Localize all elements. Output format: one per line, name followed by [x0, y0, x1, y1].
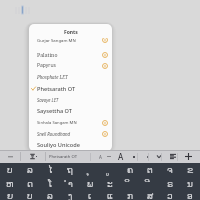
staticText: ລ	[47, 191, 53, 200]
staticText: ລ	[27, 165, 33, 175]
button[interactable]: ນ	[180, 177, 200, 191]
button[interactable]: ວ	[160, 191, 180, 200]
button[interactable]: Smaller text	[94, 150, 106, 163]
button[interactable]: ດ	[20, 177, 40, 191]
button[interactable]: ູ	[100, 163, 120, 177]
button[interactable]: ຈ	[160, 163, 180, 177]
button[interactable]: ແ	[100, 191, 120, 200]
button[interactable]: ບ	[0, 163, 20, 177]
staticText: ໄ	[48, 165, 53, 175]
staticText: ຖ	[67, 165, 73, 175]
button[interactable]: Phetsarath OT	[29, 83, 112, 94]
button[interactable]: ຍ	[0, 191, 20, 200]
button[interactable]: Align	[166, 150, 179, 163]
button[interactable]: Undo	[0, 150, 20, 163]
staticText: Fonts	[64, 29, 78, 36]
staticText: Papyrus	[37, 62, 56, 69]
staticText: ບ	[7, 165, 13, 175]
button[interactable]: ອ	[180, 191, 200, 200]
button[interactable]: Savoye LET	[29, 94, 112, 105]
staticText: ວ	[167, 191, 173, 200]
staticText: ເ	[88, 191, 92, 200]
staticText: ຈ	[167, 165, 173, 175]
button[interactable]: Snell Roundhand	[29, 128, 112, 139]
staticText: A	[118, 151, 124, 162]
button[interactable]: ຂ	[180, 163, 200, 177]
staticText: ກ	[127, 191, 134, 200]
staticText: ຄ	[127, 165, 134, 175]
button[interactable]: Text size	[104, 150, 114, 163]
staticText: Gurjar Sangam MN	[37, 38, 76, 43]
button[interactable]: More options	[153, 150, 165, 163]
button[interactable]: Larger text	[115, 150, 127, 163]
staticText: Saysettha OT	[37, 107, 72, 115]
button[interactable]: ລ	[20, 163, 40, 177]
staticText: Phetsarath OT	[37, 85, 76, 93]
staticText: ບ	[27, 191, 33, 200]
staticText: A	[99, 154, 102, 160]
staticText: ຂ	[187, 165, 194, 175]
staticText: Souliyo Unicode	[37, 141, 80, 149]
staticText: Snell Roundhand	[37, 131, 71, 137]
button[interactable]: ພ	[80, 177, 100, 191]
button[interactable]: ງ	[60, 191, 80, 200]
button[interactable]: ຳ	[60, 177, 80, 191]
button[interactable]: Text colour	[128, 150, 139, 163]
button[interactable]: ບ	[20, 191, 40, 200]
button[interactable]: Add	[182, 150, 195, 163]
button[interactable]: ີ	[140, 177, 160, 191]
button[interactable]: ໂ	[40, 177, 60, 191]
staticText: Palatino	[37, 51, 58, 58]
staticText: Phosphate LET	[37, 74, 68, 80]
button[interactable]: ໄ	[40, 163, 60, 177]
button[interactable]: Saysettha OT	[29, 105, 112, 116]
button[interactable]: Paragraph style	[21, 150, 45, 163]
button[interactable]: ເ	[80, 191, 100, 200]
button[interactable]: Phosphate LET	[29, 71, 112, 82]
staticText: ນ	[187, 179, 193, 189]
button[interactable]: ຫ	[0, 177, 20, 191]
button[interactable]: ກ	[120, 191, 140, 200]
button[interactable]: Sinhala Sangam MN	[29, 117, 112, 128]
button[interactable]: Highlight	[142, 150, 153, 163]
staticText: ສ	[147, 191, 154, 200]
staticText: ໂ	[48, 179, 53, 189]
staticText: ຫ	[6, 179, 14, 189]
staticText: ຣ	[167, 179, 174, 189]
button[interactable]: ະ	[100, 177, 120, 191]
staticText: ແ	[107, 191, 113, 200]
staticText: Savoye LET	[37, 97, 59, 103]
button[interactable]: Papyrus	[29, 60, 112, 71]
staticText: Sinhala Sangam MN	[37, 120, 77, 126]
staticText: ຍ	[7, 191, 14, 200]
button[interactable]: ຕ	[140, 163, 160, 177]
button[interactable]: ຣ	[160, 177, 180, 191]
button[interactable]: Souliyo Unicode	[29, 139, 112, 150]
staticText: ຕ	[147, 165, 153, 175]
button[interactable]: ຸ	[80, 163, 100, 177]
button[interactable]: ິ	[120, 177, 140, 191]
staticText: ອ	[187, 191, 193, 200]
staticText: ຳ	[68, 179, 73, 189]
button[interactable]: ສ	[140, 191, 160, 200]
button[interactable]: ຖ	[60, 163, 80, 177]
button[interactable]: ຄ	[120, 163, 140, 177]
button[interactable]: Phetsarath OT	[46, 154, 81, 160]
staticText: ພ	[87, 179, 94, 189]
staticText: ງ	[68, 191, 73, 200]
staticText: Phetsarath OT	[49, 154, 78, 160]
staticText: ດ	[27, 179, 34, 189]
button[interactable]: Palatino	[29, 49, 112, 60]
button[interactable]: Gurjar Sangam MN	[29, 38, 112, 47]
button[interactable]: ລ	[40, 191, 60, 200]
staticText: ະ	[107, 179, 113, 189]
